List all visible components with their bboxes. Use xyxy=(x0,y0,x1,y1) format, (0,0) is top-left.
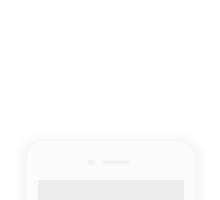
button[interactable]: Phone device mockup xyxy=(0,0,220,200)
